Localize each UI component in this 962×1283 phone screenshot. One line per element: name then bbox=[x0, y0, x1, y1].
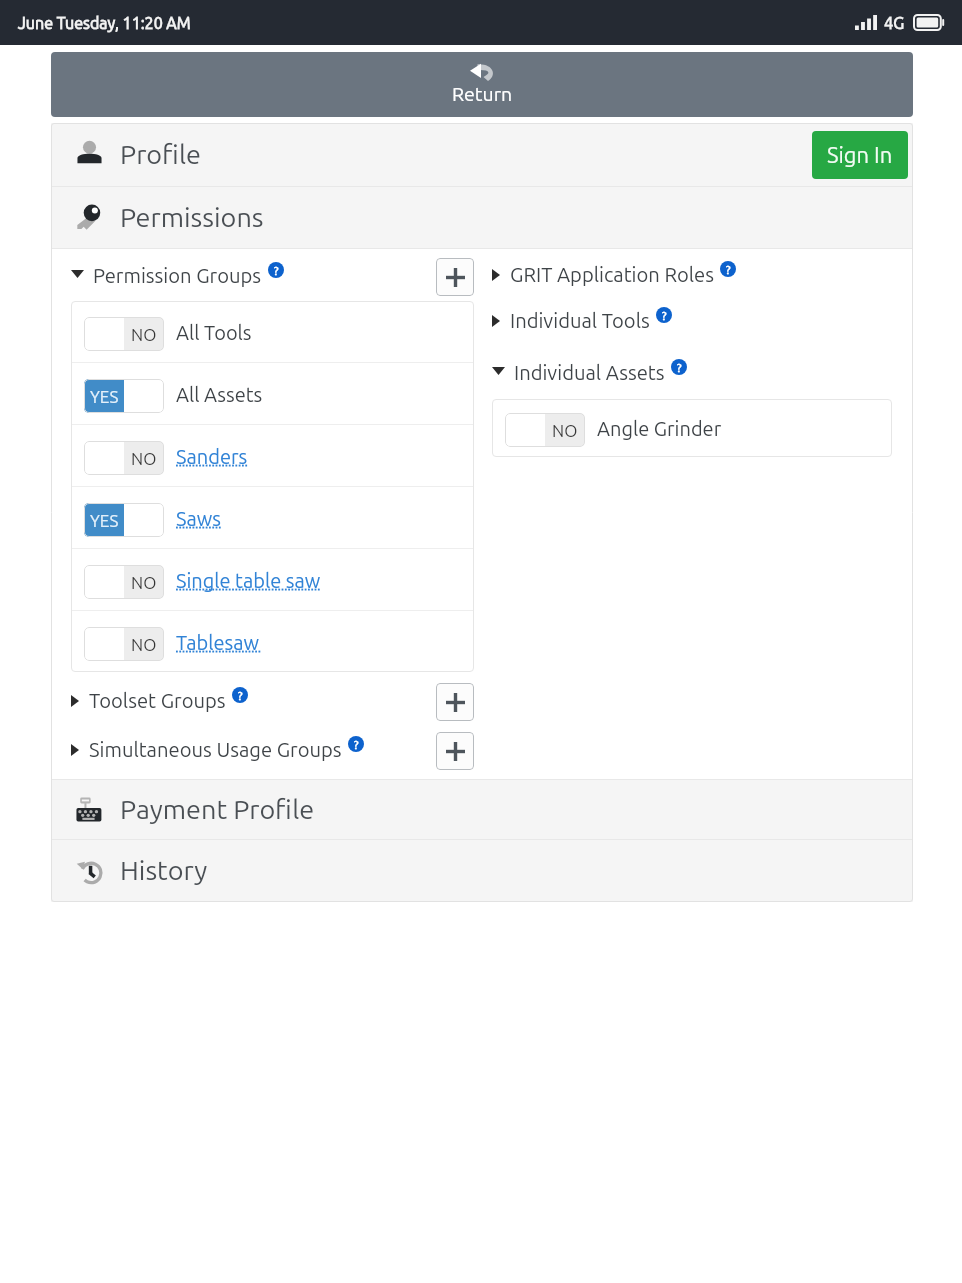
staticText: Individual Tools bbox=[510, 309, 650, 332]
staticText: Single table saw bbox=[176, 569, 321, 591]
button[interactable]: Add Simultaneous Usage Groups bbox=[436, 732, 474, 770]
staticText: NO bbox=[131, 449, 157, 468]
staticText: NO bbox=[131, 573, 157, 592]
button[interactable]: Toggle NO bbox=[492, 399, 892, 457]
button[interactable]: Profile bbox=[51, 123, 913, 186]
button[interactable]: Toggle YES bbox=[71, 363, 474, 424]
button[interactable]: Toggle NO bbox=[71, 549, 474, 610]
staticText: Payment Profile bbox=[120, 794, 315, 824]
button[interactable]: Help bbox=[656, 307, 672, 323]
staticText: Simultaneous Usage Groups bbox=[89, 738, 342, 761]
button[interactable]: Toggle YES bbox=[71, 487, 474, 548]
button[interactable]: Toggle NO bbox=[71, 301, 474, 362]
button[interactable]: Individual Assets bbox=[492, 363, 892, 386]
button[interactable]: Toggle YES bbox=[84, 503, 164, 537]
button[interactable]: Add Toolset Groups bbox=[436, 683, 474, 721]
button[interactable]: Toolset Groups bbox=[71, 691, 430, 714]
staticText: YES bbox=[90, 387, 119, 406]
button[interactable]: Help bbox=[232, 687, 248, 703]
button[interactable]: Toggle NO bbox=[505, 413, 585, 447]
staticText: Return bbox=[452, 83, 513, 105]
button[interactable]: Help bbox=[348, 736, 364, 752]
staticText: June Tuesday, 11:20 AM bbox=[18, 14, 191, 32]
button[interactable]: Permissions bbox=[51, 187, 913, 248]
button[interactable]: Toggle NO bbox=[71, 611, 474, 672]
staticText: ? bbox=[274, 264, 279, 277]
staticText: ? bbox=[238, 689, 243, 702]
button[interactable]: Individual Tools bbox=[492, 311, 892, 334]
button[interactable]: Toggle YES bbox=[84, 379, 164, 413]
staticText: ? bbox=[354, 738, 359, 751]
staticText: Tablesaw bbox=[176, 631, 260, 653]
staticText: YES bbox=[90, 511, 119, 530]
button[interactable]: Simultaneous Usage Groups bbox=[71, 740, 430, 763]
button[interactable]: GRIT Application Roles bbox=[492, 265, 892, 288]
staticText: GRIT Application Roles bbox=[510, 263, 714, 286]
button[interactable]: Help bbox=[268, 262, 284, 278]
staticText: History bbox=[120, 855, 208, 885]
staticText: 4G bbox=[884, 14, 905, 32]
staticText: All Assets bbox=[176, 383, 263, 405]
button[interactable]: Toggle NO bbox=[84, 627, 164, 661]
button[interactable]: Permission Groups bbox=[71, 266, 430, 289]
button[interactable]: Toggle NO bbox=[84, 441, 164, 475]
staticText: NO bbox=[131, 635, 157, 654]
staticText: ? bbox=[677, 361, 682, 374]
button[interactable]: Return bbox=[51, 52, 913, 117]
staticText: NO bbox=[131, 325, 157, 344]
staticText: All Tools bbox=[176, 321, 252, 343]
staticText: NO bbox=[552, 421, 578, 440]
staticText: Angle Grinder bbox=[597, 417, 722, 439]
button[interactable]: Help bbox=[671, 359, 687, 375]
staticText: Permission Groups bbox=[93, 264, 262, 287]
button[interactable]: Help bbox=[720, 261, 736, 277]
staticText: Permissions bbox=[120, 202, 264, 232]
button[interactable]: Toggle NO bbox=[84, 565, 164, 599]
button[interactable]: Sign In bbox=[812, 131, 908, 179]
button[interactable]: History bbox=[51, 840, 913, 902]
staticText: Sanders bbox=[176, 445, 248, 467]
button[interactable]: Toggle NO bbox=[84, 317, 164, 351]
button[interactable]: Add Permission Groups bbox=[436, 258, 474, 296]
staticText: Profile bbox=[120, 139, 201, 169]
button[interactable]: Payment Profile bbox=[51, 780, 913, 839]
staticText: Individual Assets bbox=[514, 361, 665, 384]
staticText: ? bbox=[662, 309, 667, 322]
staticText: Saws bbox=[176, 507, 221, 529]
staticText: Sign In bbox=[827, 142, 893, 167]
button[interactable]: Toggle NO bbox=[71, 425, 474, 486]
staticText: Toolset Groups bbox=[89, 689, 226, 712]
staticText: ? bbox=[726, 263, 731, 276]
